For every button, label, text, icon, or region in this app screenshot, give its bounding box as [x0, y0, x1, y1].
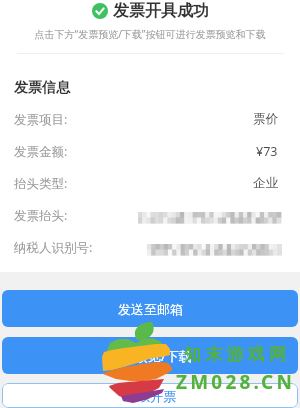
staticText: 发票项目:: [14, 111, 68, 128]
staticText: 发送至邮箱: [118, 301, 183, 317]
staticText: 抬头类型:: [14, 175, 68, 192]
staticText: 企业: [253, 175, 278, 191]
staticText: 点击下方“发票预览/下载”按钮可进行发票预览和下载: [0, 27, 300, 41]
staticText: 票价: [253, 111, 278, 127]
button[interactable]: 继续开票: [2, 383, 298, 408]
other: Success: [92, 3, 108, 19]
staticText: 知末游戏网: [182, 344, 288, 365]
button[interactable]: 发票预览/下载: [2, 337, 298, 374]
button[interactable]: 发票抬头:: [14, 199, 278, 231]
button[interactable]: 发送至邮箱: [2, 290, 298, 327]
staticText: 发票开具成功: [113, 1, 209, 21]
button[interactable]: 纳税人识别号:: [14, 231, 278, 263]
staticText: 继续开票: [124, 388, 176, 404]
button[interactable]: 发票项目:: [14, 103, 278, 135]
button[interactable]: 发票金额:: [14, 135, 278, 167]
staticText: 发票预览/下载: [109, 347, 192, 365]
button[interactable]: 抬头类型:: [14, 167, 278, 199]
staticText: 纳税人识别号:: [14, 239, 93, 256]
staticText: 发票金额:: [14, 143, 68, 160]
staticText: 发票信息: [14, 79, 70, 97]
staticText: 发票抬头:: [14, 207, 68, 224]
staticText: ZM028.CN: [176, 369, 296, 395]
staticText: ¥73: [256, 143, 278, 160]
